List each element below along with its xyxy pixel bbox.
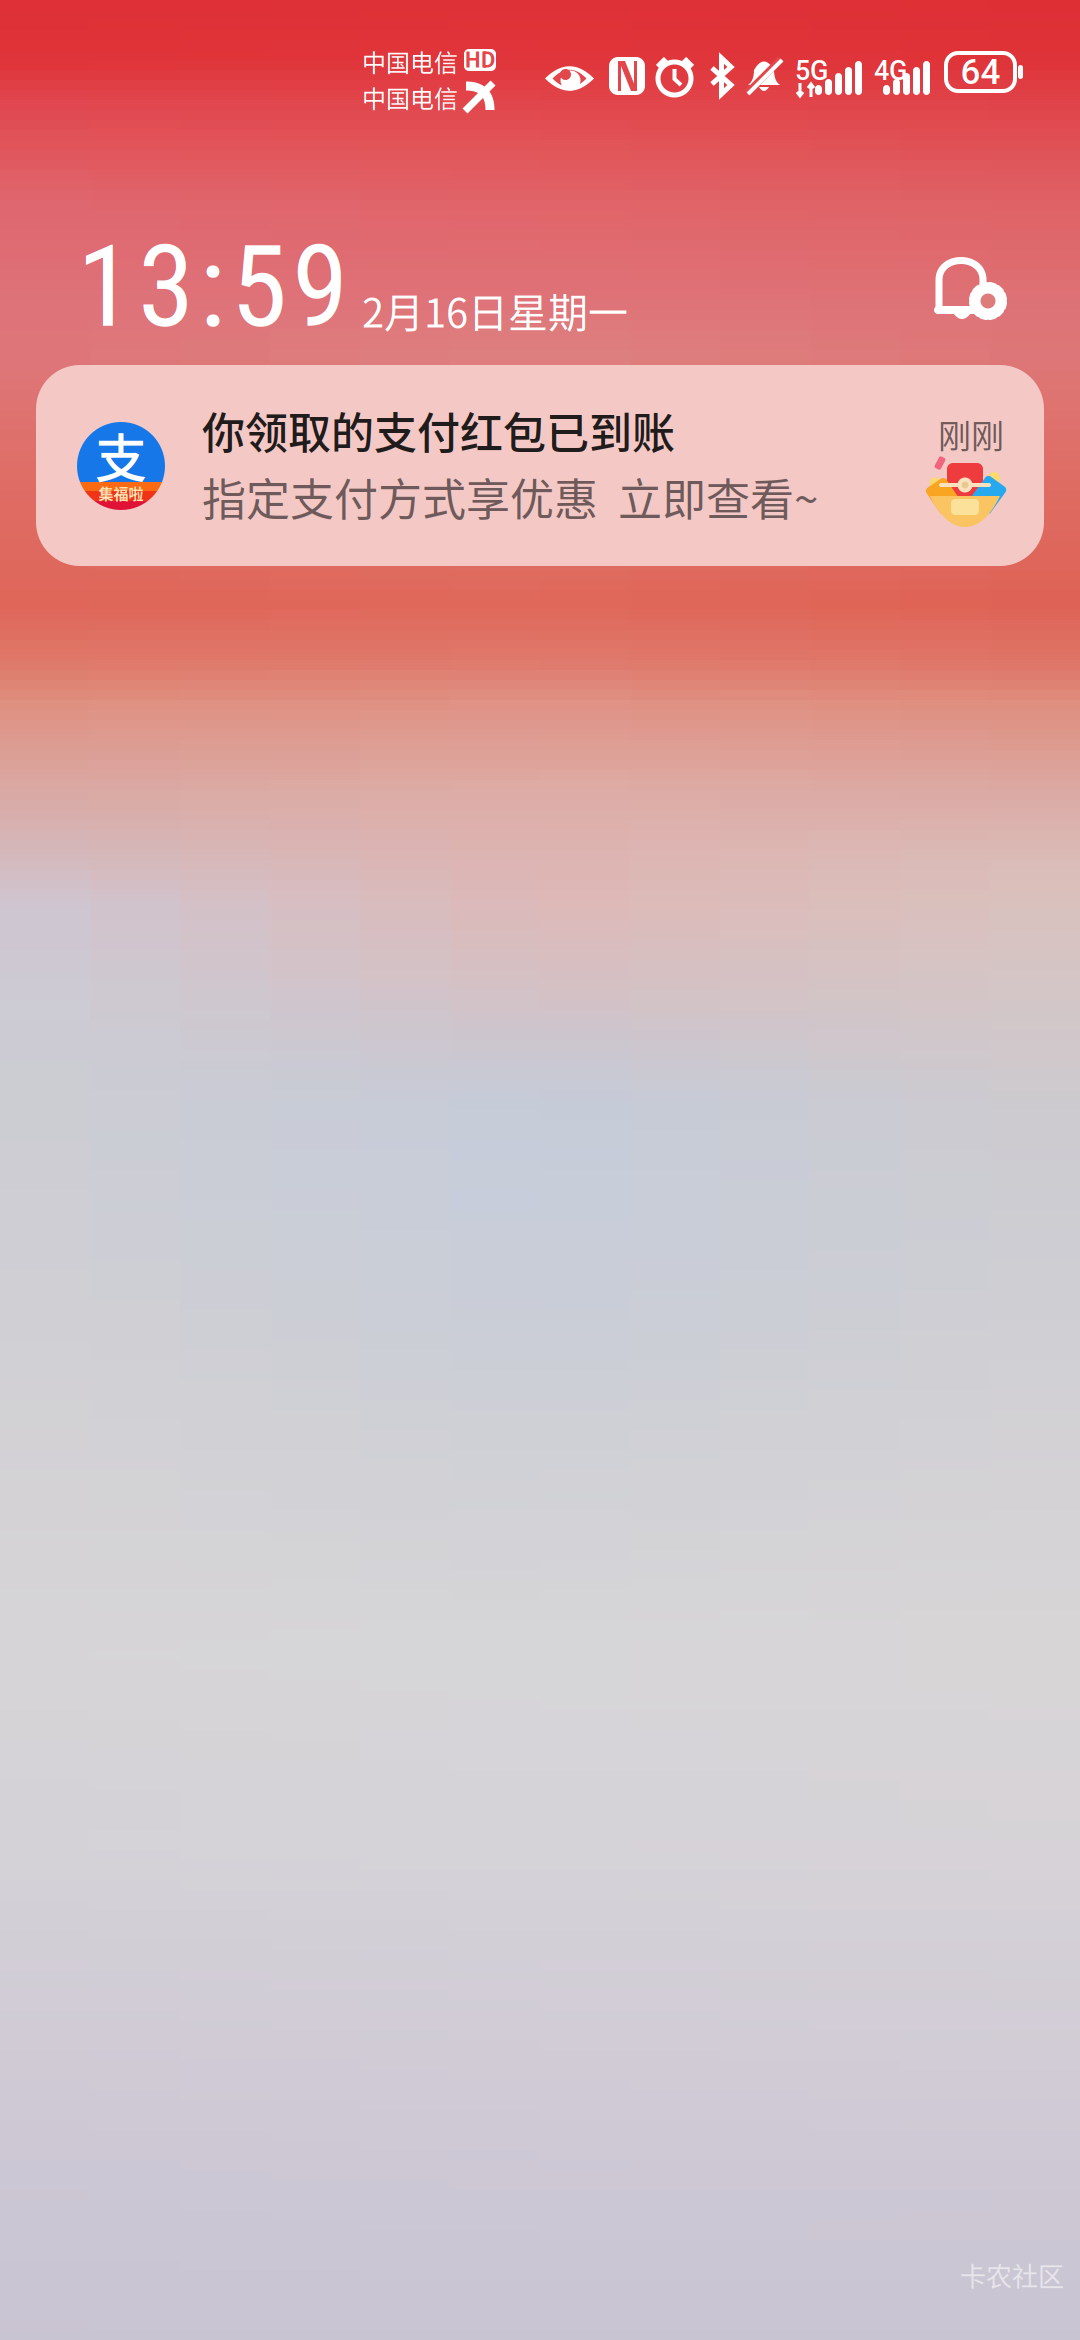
staticText: 2月16日星期一 xyxy=(362,281,628,339)
staticText: 集福啦 xyxy=(98,482,143,504)
staticText: 13:59 xyxy=(77,220,348,354)
button[interactable]: 支 xyxy=(36,365,1044,566)
staticText: HD xyxy=(465,47,495,73)
button[interactable]: Notification settings xyxy=(934,252,1006,318)
staticText: 4G xyxy=(874,55,907,87)
staticText: 卡农社区 xyxy=(960,2256,1064,2294)
staticText: 64 xyxy=(960,51,1000,92)
staticText: 指定支付方式享优惠 立即查看~ xyxy=(202,465,818,529)
staticText: 支 xyxy=(95,417,147,493)
staticText: 你领取的支付红包已到账 xyxy=(202,399,675,461)
staticText: 中国电信 xyxy=(362,80,458,115)
staticText: 刚刚 xyxy=(938,410,1004,458)
staticText: 5G xyxy=(795,55,828,87)
staticText: 中国电信 xyxy=(362,44,458,79)
